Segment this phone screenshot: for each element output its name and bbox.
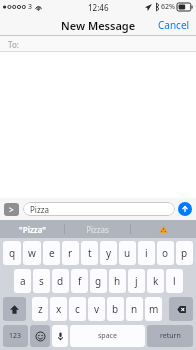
button[interactable]: u bbox=[119, 241, 136, 265]
button[interactable]: z bbox=[32, 297, 48, 321]
button[interactable]: g bbox=[90, 269, 107, 293]
staticText: r bbox=[68, 246, 73, 260]
button[interactable]: t bbox=[81, 241, 98, 265]
button[interactable]: Cancel bbox=[152, 15, 196, 35]
staticText: w bbox=[28, 246, 36, 260]
staticText: a bbox=[20, 274, 26, 288]
staticText: p bbox=[181, 246, 188, 260]
staticText: d bbox=[57, 274, 64, 288]
staticText: e bbox=[49, 246, 55, 260]
staticText: k bbox=[153, 274, 159, 288]
button[interactable]: 123 bbox=[3, 325, 28, 347]
button[interactable]: b bbox=[107, 297, 124, 321]
button[interactable]: Dictate bbox=[52, 325, 68, 347]
button[interactable]: d bbox=[52, 269, 69, 293]
button[interactable]: e bbox=[43, 241, 60, 265]
staticText: i bbox=[145, 246, 148, 260]
button[interactable]: return bbox=[147, 325, 193, 347]
staticText: l bbox=[173, 274, 176, 288]
button[interactable]: i bbox=[138, 241, 155, 265]
button[interactable]: Send bbox=[178, 202, 192, 216]
button[interactable]: q bbox=[3, 241, 21, 265]
button[interactable]: Emoji bbox=[30, 325, 50, 347]
button[interactable]: k bbox=[147, 269, 164, 293]
button[interactable]: l bbox=[166, 269, 183, 293]
button[interactable]: space bbox=[70, 325, 145, 347]
button[interactable]: r bbox=[62, 241, 79, 265]
staticText: g bbox=[95, 274, 102, 288]
staticText: b bbox=[112, 302, 119, 316]
staticText: 123 bbox=[9, 331, 22, 341]
button[interactable]: Backspace bbox=[169, 297, 193, 321]
staticText: y bbox=[106, 246, 112, 260]
staticText: f bbox=[78, 274, 82, 288]
button[interactable]: Pizzas bbox=[65, 220, 130, 238]
staticText: u bbox=[124, 246, 131, 260]
staticText: j bbox=[135, 274, 138, 288]
staticText: Cancel bbox=[158, 18, 190, 32]
staticText: 12:46 bbox=[88, 2, 109, 13]
staticText: q bbox=[9, 246, 16, 260]
button[interactable]: "Pizza" bbox=[0, 220, 64, 238]
button[interactable]: Pizza bbox=[23, 202, 175, 216]
button[interactable]: y bbox=[100, 241, 117, 265]
staticText: m bbox=[149, 302, 159, 316]
button[interactable]: f bbox=[71, 269, 88, 293]
staticText: 62% bbox=[161, 2, 175, 12]
button[interactable]: n bbox=[126, 297, 143, 321]
staticText: z bbox=[38, 302, 43, 316]
staticText: c bbox=[75, 302, 80, 316]
staticText: x bbox=[56, 302, 62, 316]
button[interactable]: a bbox=[14, 269, 31, 293]
staticText: n bbox=[131, 302, 138, 316]
button[interactable]: s bbox=[33, 269, 50, 293]
staticText: o bbox=[162, 246, 169, 260]
button[interactable]: To: bbox=[0, 36, 196, 52]
button[interactable]: o bbox=[157, 241, 174, 265]
button[interactable]: j bbox=[128, 269, 145, 293]
button[interactable]: p bbox=[176, 241, 193, 265]
staticText: Pizza bbox=[30, 204, 49, 215]
button[interactable]: Shift bbox=[3, 297, 26, 321]
staticText: > bbox=[9, 204, 14, 215]
button[interactable]: v bbox=[88, 297, 105, 321]
staticText: t bbox=[88, 246, 92, 260]
button[interactable]: w bbox=[23, 241, 41, 265]
staticText: v bbox=[94, 302, 100, 316]
staticText: h bbox=[114, 274, 121, 288]
button[interactable]: m bbox=[145, 297, 162, 321]
button[interactable]: x bbox=[50, 297, 67, 321]
button[interactable]: Pizza emoji bbox=[131, 220, 196, 238]
staticText: s bbox=[39, 274, 44, 288]
staticText: return bbox=[160, 331, 181, 341]
staticText: New Message bbox=[61, 18, 136, 33]
staticText: "Pizza" bbox=[19, 224, 46, 235]
staticText: To: bbox=[8, 39, 19, 50]
button[interactable]: c bbox=[69, 297, 86, 321]
button[interactable]: Attach bbox=[4, 203, 19, 216]
staticText: space bbox=[98, 331, 117, 341]
button[interactable]: h bbox=[109, 269, 126, 293]
staticText: Pizzas bbox=[86, 224, 109, 235]
staticText: 3 bbox=[28, 2, 33, 12]
